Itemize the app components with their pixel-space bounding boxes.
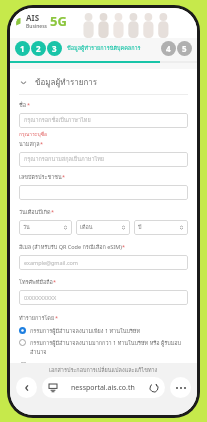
staticText: กรุณากรอกชื่อเป็นภาษาไทย [24, 116, 91, 125]
button[interactable]: กรรมการผู้มีอำนาจลงนามมากกว่า 1 ท่านในบร… [19, 339, 188, 357]
staticText: 4 [166, 43, 171, 54]
staticText: ข้อมูลผู้ทำรายการ [35, 76, 98, 89]
staticText: อีเมล (สำหรับรับ QR Code กรณีเลือก eSIM) [19, 243, 122, 252]
staticText: ปี [138, 223, 142, 232]
staticText: 5G [50, 12, 67, 30]
button[interactable]: กรุณากรอกชื่อเป็นภาษาไทย [19, 113, 188, 128]
staticText: กรุณากรอกนามสกุลเป็นภาษาไทย [24, 155, 105, 164]
staticText: กรรมการผู้มีอำนาจลงนามเพียง 1 ท่านในบริษ… [30, 327, 141, 336]
button[interactable]: กรุณากรอกนามสกุลเป็นภาษาไทย [19, 152, 188, 167]
button[interactable]: Collapse [19, 76, 188, 89]
staticText: ชื่อ [19, 101, 27, 110]
staticText: * [122, 243, 126, 250]
button[interactable]: วัน [19, 220, 72, 235]
staticText: เอกสารประกอบการเปลี่ยนแปลงและแก้ไขทาง [49, 366, 158, 375]
staticText: Business [26, 23, 48, 30]
staticText: วันเดือนปีเกิด [19, 208, 51, 217]
other: Reload [150, 384, 158, 392]
staticText: 1 [20, 43, 25, 54]
staticText: example@gmail.com [24, 259, 79, 266]
staticText: 5 [182, 43, 187, 54]
button[interactable]: nessportal.ais.co.th [42, 377, 165, 398]
staticText: nessportal.ais.co.th [71, 383, 135, 393]
staticText: * [55, 314, 59, 321]
staticText: * [51, 208, 55, 215]
button[interactable]: 3 [47, 41, 62, 56]
button[interactable]: example@gmail.com [19, 255, 188, 270]
staticText: * [53, 278, 57, 285]
staticText: 0XXXXXXXXX [24, 294, 57, 301]
button[interactable]: เดือน [76, 220, 130, 235]
staticText: * [62, 173, 66, 180]
button[interactable]: 4 [161, 41, 176, 56]
button[interactable]: ปี [134, 220, 188, 235]
staticText: * [27, 101, 31, 108]
button[interactable]: 5 [177, 41, 192, 56]
staticText: เดือน [80, 223, 93, 232]
staticText: AIS [26, 12, 40, 23]
staticText: โทรศัพท์มือถือ [19, 278, 53, 287]
staticText: กรุณาระบุชื่อ [19, 130, 48, 138]
staticText: ทำรายการโดย [19, 314, 55, 323]
staticText: กรรมการผู้มีอำนาจลงนามมากกว่า 1 ท่านในบร… [30, 339, 188, 357]
button[interactable]: Back [16, 377, 37, 398]
staticText: วัน [23, 223, 30, 232]
staticText: 2 [36, 43, 41, 54]
staticText: นามสกุล [19, 140, 40, 149]
staticText: 3 [52, 43, 57, 54]
button[interactable] [19, 185, 188, 200]
button[interactable]: 1 [15, 41, 30, 56]
staticText: ข้อมูลผู้ทำรายการนิติบุคคลการ [67, 44, 141, 53]
other: Collapse [19, 78, 28, 87]
button[interactable]: กรรมการผู้มีอำนาจลงนามเพียง 1 ท่านในบริษ… [19, 327, 188, 336]
button[interactable]: More [170, 377, 191, 398]
button[interactable]: 2 [31, 41, 46, 56]
button[interactable]: 0XXXXXXXXX [19, 290, 188, 305]
staticText: * [40, 140, 44, 147]
staticText: เลขบัตรประชาชน [19, 173, 62, 182]
